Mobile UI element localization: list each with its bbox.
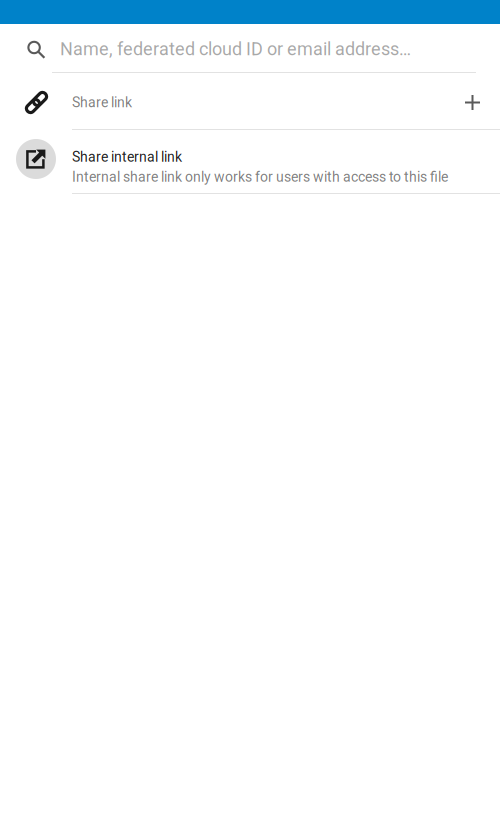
button[interactable]: Share link: [0, 73, 500, 130]
staticText: Share internal link: [72, 149, 182, 165]
button[interactable]: Add share link: [448, 78, 496, 126]
staticText: Internal share link only works for users…: [72, 169, 448, 185]
button[interactable]: Name, federated cloud ID or email addres…: [0, 24, 500, 73]
button[interactable]: Share internal link: [0, 130, 500, 194]
staticText: Share link: [72, 94, 132, 111]
staticText: Name, federated cloud ID or email addres…: [60, 38, 411, 60]
